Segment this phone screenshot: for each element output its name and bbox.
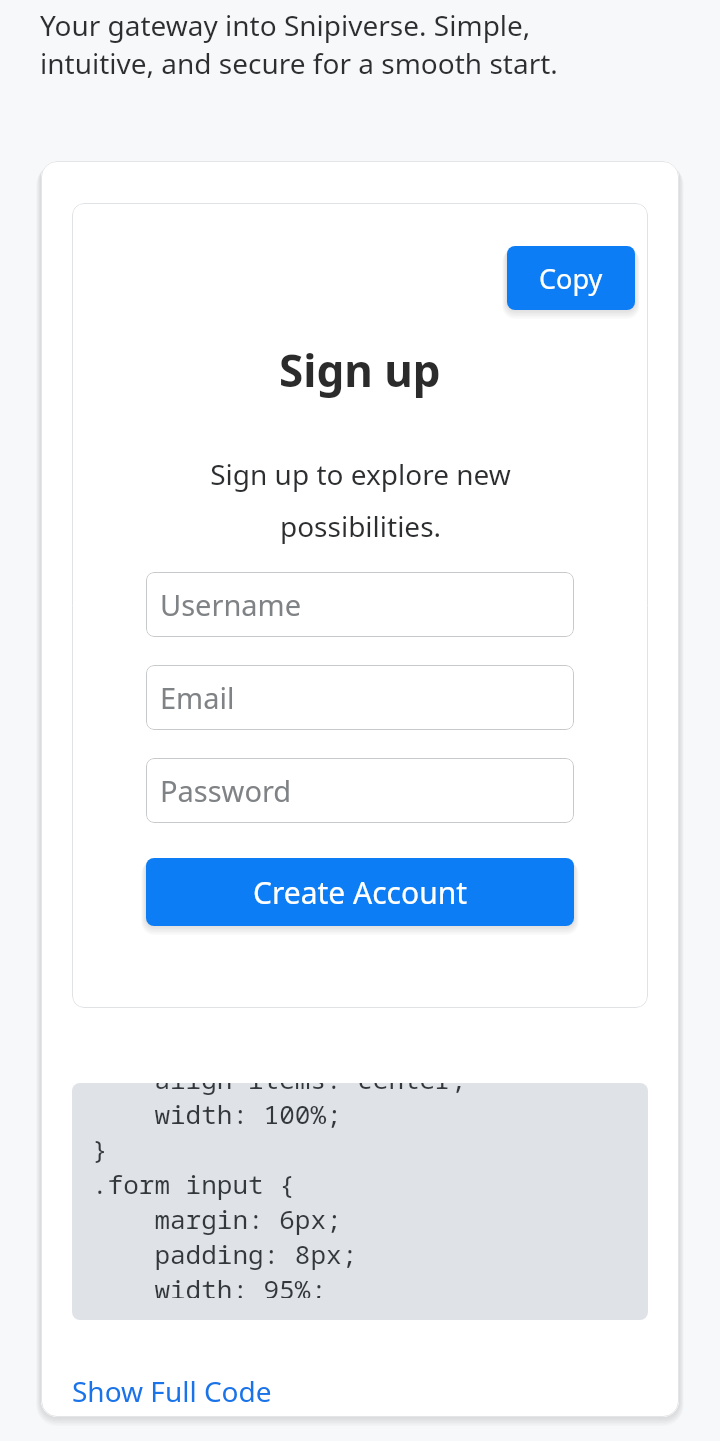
button[interactable]: Password	[146, 758, 574, 823]
staticText: Password	[160, 771, 292, 810]
staticText: .form input {	[92, 1166, 295, 1201]
staticText: Show Full Code	[72, 1372, 272, 1410]
staticText: Sign up	[279, 340, 441, 400]
staticText: Copy	[539, 260, 603, 297]
staticText: Email	[160, 678, 235, 717]
staticText: }	[92, 1131, 108, 1166]
button[interactable]: Show Full Code	[72, 1366, 272, 1416]
button[interactable]: Email	[146, 665, 574, 730]
staticText: padding: 8px;	[92, 1236, 358, 1271]
button[interactable]: Username	[146, 572, 574, 637]
staticText: Username	[160, 585, 302, 624]
staticText: Your gateway into Snipiverse. Simple,	[40, 6, 531, 44]
staticText: Sign up to explore new possibilities.	[210, 455, 511, 545]
button[interactable]: Copy	[507, 246, 635, 310]
button[interactable]: Create Account	[146, 858, 574, 926]
staticText: width: 95%;	[92, 1271, 327, 1298]
staticText: align-items: center;	[92, 1083, 467, 1096]
staticText: width: 100%;	[92, 1096, 342, 1131]
staticText: Create Account	[253, 872, 468, 913]
staticText: margin: 6px;	[92, 1201, 342, 1236]
staticText: intuitive, and secure for a smooth start…	[40, 44, 558, 82]
